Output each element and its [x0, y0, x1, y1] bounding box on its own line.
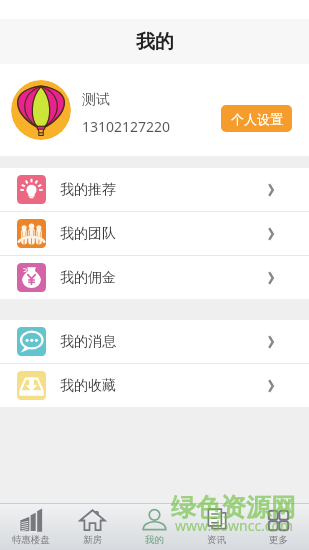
button[interactable]: 我的收藏	[0, 364, 309, 407]
staticText: 我的	[136, 30, 174, 54]
staticText: 更多	[269, 534, 288, 546]
staticText: 个人设置	[231, 111, 283, 127]
button[interactable]: 我的推荐	[0, 168, 309, 211]
button[interactable]: 我的佣金	[0, 256, 309, 299]
staticText: 资讯	[207, 534, 226, 546]
button[interactable]: 特惠楼盘	[0, 504, 61, 550]
staticText: 新房	[83, 534, 102, 546]
staticText: 我的	[145, 534, 164, 546]
button[interactable]: 个人设置	[221, 105, 292, 132]
button[interactable]: 我的消息	[0, 320, 309, 363]
staticText: 我的收藏	[60, 377, 116, 395]
staticText: www.downcc.com	[175, 516, 294, 535]
staticText: 我的佣金	[60, 269, 116, 287]
staticText: 我的消息	[60, 333, 116, 351]
button[interactable]: 更多	[247, 504, 309, 550]
staticText: 绿色资源网	[171, 492, 296, 523]
staticText: 我的团队	[60, 225, 116, 243]
staticText: 我的推荐	[60, 181, 116, 199]
staticText: 特惠楼盘	[12, 534, 50, 546]
button[interactable]: 我的团队	[0, 212, 309, 255]
button[interactable]: 资讯	[185, 504, 247, 550]
button[interactable]: 新房	[61, 504, 123, 550]
button[interactable]: 我的	[123, 504, 185, 550]
staticText: 测试	[82, 91, 110, 109]
staticText: 13102127220	[82, 117, 171, 136]
